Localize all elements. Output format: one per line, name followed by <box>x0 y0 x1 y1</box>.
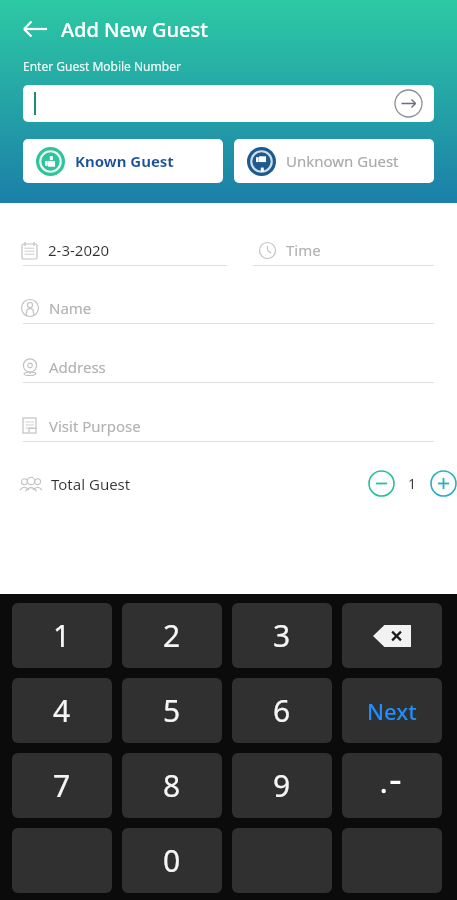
button[interactable]: Known Guest <box>23 139 223 183</box>
button[interactable]: Increase guest count <box>430 470 457 497</box>
button[interactable]: 4 <box>12 678 112 743</box>
button[interactable]: 2 <box>122 603 222 668</box>
button[interactable]: Submit number <box>23 85 434 122</box>
staticText: Visit Purpose <box>49 416 141 436</box>
staticText: 1 <box>53 615 71 656</box>
button[interactable]: 6 <box>232 678 332 743</box>
staticText: Address <box>49 357 106 377</box>
staticText: 2 <box>163 615 181 656</box>
staticText: Time <box>286 240 321 260</box>
staticText: 3 <box>273 615 291 656</box>
staticText: Unknown Guest <box>286 151 399 171</box>
staticText: 7 <box>53 765 71 806</box>
button[interactable]: 0 <box>122 828 222 893</box>
staticText: Name <box>49 298 92 318</box>
button[interactable]: 5 <box>122 678 222 743</box>
staticText: 8 <box>163 765 181 806</box>
staticText: Next <box>367 696 417 726</box>
staticText: Enter Guest Mobile Number <box>23 58 181 74</box>
button[interactable]: 8 <box>122 753 222 818</box>
staticText: 9 <box>273 765 291 806</box>
button[interactable]: 1 <box>12 603 112 668</box>
staticText: 0 <box>163 840 181 881</box>
staticText: Total Guest <box>51 474 131 494</box>
button[interactable]: Next <box>342 678 442 743</box>
button[interactable]: Backspace <box>342 603 442 668</box>
button[interactable]: 3 <box>232 603 332 668</box>
staticText: 5 <box>163 690 181 731</box>
staticText: Known Guest <box>75 151 174 171</box>
button[interactable]: Unknown Guest <box>234 139 434 183</box>
button[interactable]: Back <box>18 12 52 46</box>
staticText: 2-3-2020 <box>48 240 110 260</box>
staticText: 4 <box>53 690 71 731</box>
button[interactable]: Decrease guest count <box>368 470 395 497</box>
button[interactable] <box>342 753 442 818</box>
button[interactable]: Submit number <box>394 89 423 118</box>
staticText: 1 <box>408 474 417 493</box>
button[interactable]: 7 <box>12 753 112 818</box>
staticText: 6 <box>273 690 291 731</box>
staticText: Add New Guest <box>61 16 208 43</box>
button[interactable]: 9 <box>232 753 332 818</box>
